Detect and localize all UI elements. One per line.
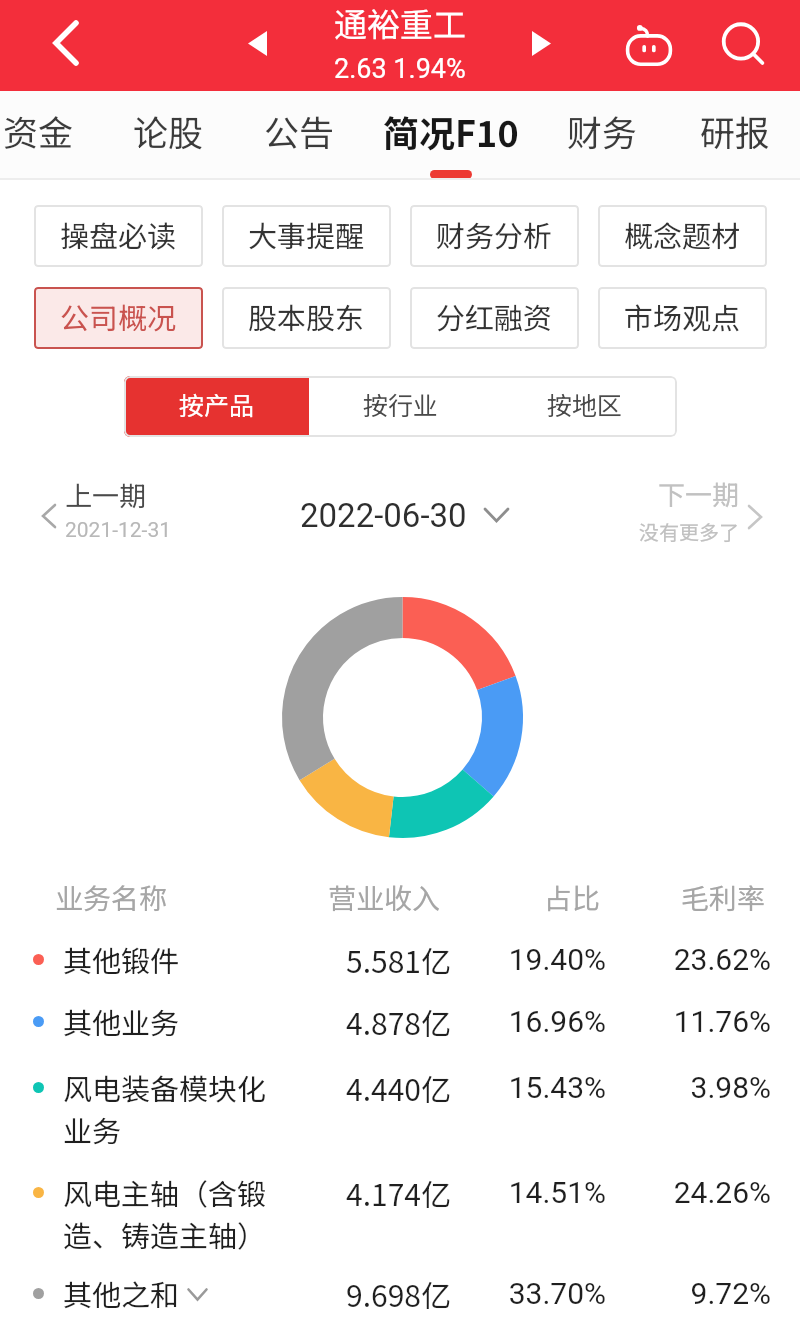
staticText: 风电主轴（含锻造、铸造主轴）: [63, 1171, 278, 1255]
staticText: 研报: [700, 105, 771, 156]
button[interactable]: 风电装备模块化业务: [0, 1066, 800, 1170]
staticText: 按产品: [179, 386, 255, 422]
staticText: 24.26%: [673, 1175, 771, 1210]
button[interactable]: 风电主轴（含锻造、铸造主轴）: [0, 1171, 800, 1275]
staticText: 股本股东: [248, 295, 365, 337]
button[interactable]: 财务分析: [410, 205, 579, 267]
staticText: 按地区: [547, 386, 623, 422]
staticText: 论股: [133, 105, 204, 156]
button[interactable]: 财务: [545, 91, 660, 180]
button[interactable]: Back: [26, 3, 106, 83]
button[interactable]: 其他锻件: [0, 938, 800, 1000]
staticText: 14.51%: [508, 1175, 606, 1210]
button[interactable]: 上一期: [37, 471, 172, 547]
staticText: 11.76%: [673, 1004, 771, 1039]
button[interactable]: 公告: [242, 91, 357, 180]
staticText: 2021-12-31: [65, 518, 172, 543]
staticText: 分红融资: [436, 295, 553, 337]
staticText: 公司概况: [60, 295, 177, 337]
button[interactable]: 其他业务: [0, 1000, 800, 1062]
staticText: 风电装备模块化业务: [63, 1066, 278, 1150]
button[interactable]: 论股: [111, 91, 226, 180]
staticText: 其他锻件: [63, 938, 180, 980]
button[interactable]: 股本股东: [222, 287, 391, 349]
staticText: 23.62%: [673, 942, 771, 977]
staticText: 没有更多了: [639, 517, 739, 546]
button[interactable]: 按行业: [309, 376, 493, 437]
staticText: 4.440亿: [346, 1066, 451, 1108]
staticText: 市场观点: [624, 295, 741, 337]
button[interactable]: 研报: [678, 91, 793, 180]
staticText: 下一期: [658, 474, 739, 513]
staticText: 财务分析: [436, 213, 553, 255]
staticText: 9.72%: [690, 1276, 771, 1311]
staticText: 16.96%: [508, 1004, 606, 1039]
staticText: 其他之和: [63, 1272, 180, 1314]
button[interactable]: 其他之和: [0, 1272, 800, 1332]
staticText: 财务: [567, 105, 638, 156]
button[interactable]: 分红融资: [410, 287, 579, 349]
button[interactable]: 简况F10: [361, 91, 541, 180]
button[interactable]: 按产品: [124, 376, 309, 437]
button[interactable]: Next stock: [501, 3, 581, 83]
staticText: 占比: [480, 877, 600, 918]
staticText: 其他业务: [63, 1000, 180, 1042]
button[interactable]: 市场观点: [598, 287, 767, 349]
button[interactable]: Search: [703, 4, 783, 84]
staticText: 2022-06-30: [300, 496, 467, 535]
button[interactable]: 大事提醒: [222, 205, 391, 267]
staticText: 毛利率: [645, 877, 765, 918]
staticText: 5.581亿: [346, 938, 451, 980]
staticText: 营业收入: [320, 877, 440, 918]
staticText: 4.878亿: [346, 1000, 451, 1042]
staticText: 大事提醒: [248, 213, 365, 255]
button[interactable]: 资金: [0, 91, 96, 180]
staticText: 3.98%: [690, 1070, 771, 1105]
button[interactable]: 2022-06-30: [300, 477, 510, 553]
button[interactable]: 按地区: [493, 376, 677, 437]
staticText: 15.43%: [508, 1070, 606, 1105]
staticText: 公告: [264, 105, 335, 156]
staticText: 9.698亿: [346, 1272, 451, 1314]
button[interactable]: Previous stock: [217, 3, 297, 83]
staticText: 19.40%: [508, 942, 606, 977]
button[interactable]: AI assistant: [609, 4, 689, 84]
staticText: 简况F10: [383, 105, 519, 157]
staticText: 33.70%: [508, 1276, 606, 1311]
staticText: 4.174亿: [346, 1171, 451, 1213]
button[interactable]: 概念题材: [598, 205, 767, 267]
button[interactable]: 公司概况: [34, 287, 203, 349]
staticText: 操盘必读: [60, 213, 177, 255]
staticText: 按行业: [363, 386, 439, 422]
staticText: 资金: [3, 105, 74, 156]
staticText: 上一期: [65, 475, 146, 514]
button[interactable]: 下一期: [639, 472, 767, 548]
staticText: 业务名称: [55, 877, 270, 918]
button[interactable]: 操盘必读: [34, 205, 203, 267]
staticText: 概念题材: [624, 213, 741, 255]
staticText: 通裕重工: [334, 0, 466, 47]
staticText: 2.63 1.94%: [334, 53, 466, 85]
